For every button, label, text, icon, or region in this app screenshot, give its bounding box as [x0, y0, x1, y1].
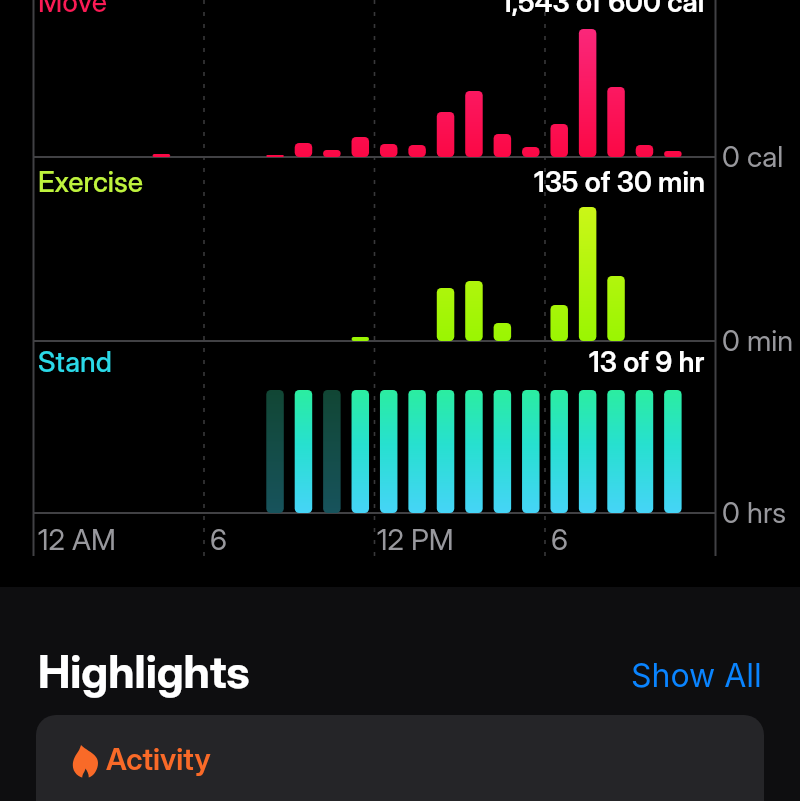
button[interactable]: Show All [631, 656, 762, 695]
button[interactable]: Activity [36, 715, 764, 801]
staticText: Activity [106, 741, 211, 777]
staticText: 0 min [722, 323, 794, 358]
staticText: Exercise [38, 165, 143, 199]
staticText: 0 cal [722, 139, 784, 174]
staticText: 6 [551, 522, 568, 557]
staticText: 1,543 of 600 cal [501, 0, 705, 19]
staticText: 6 [210, 522, 227, 557]
staticText: Show All [631, 656, 762, 695]
staticText: Move [38, 0, 107, 19]
staticText: 12 PM [377, 522, 454, 557]
staticText: 13 of 9 hr [589, 345, 705, 379]
staticText: Stand [38, 345, 112, 379]
staticText: 12 AM [38, 522, 116, 557]
staticText: 135 of 30 min [534, 165, 705, 199]
staticText: Highlights [38, 644, 250, 698]
staticText: 0 hrs [722, 495, 787, 530]
